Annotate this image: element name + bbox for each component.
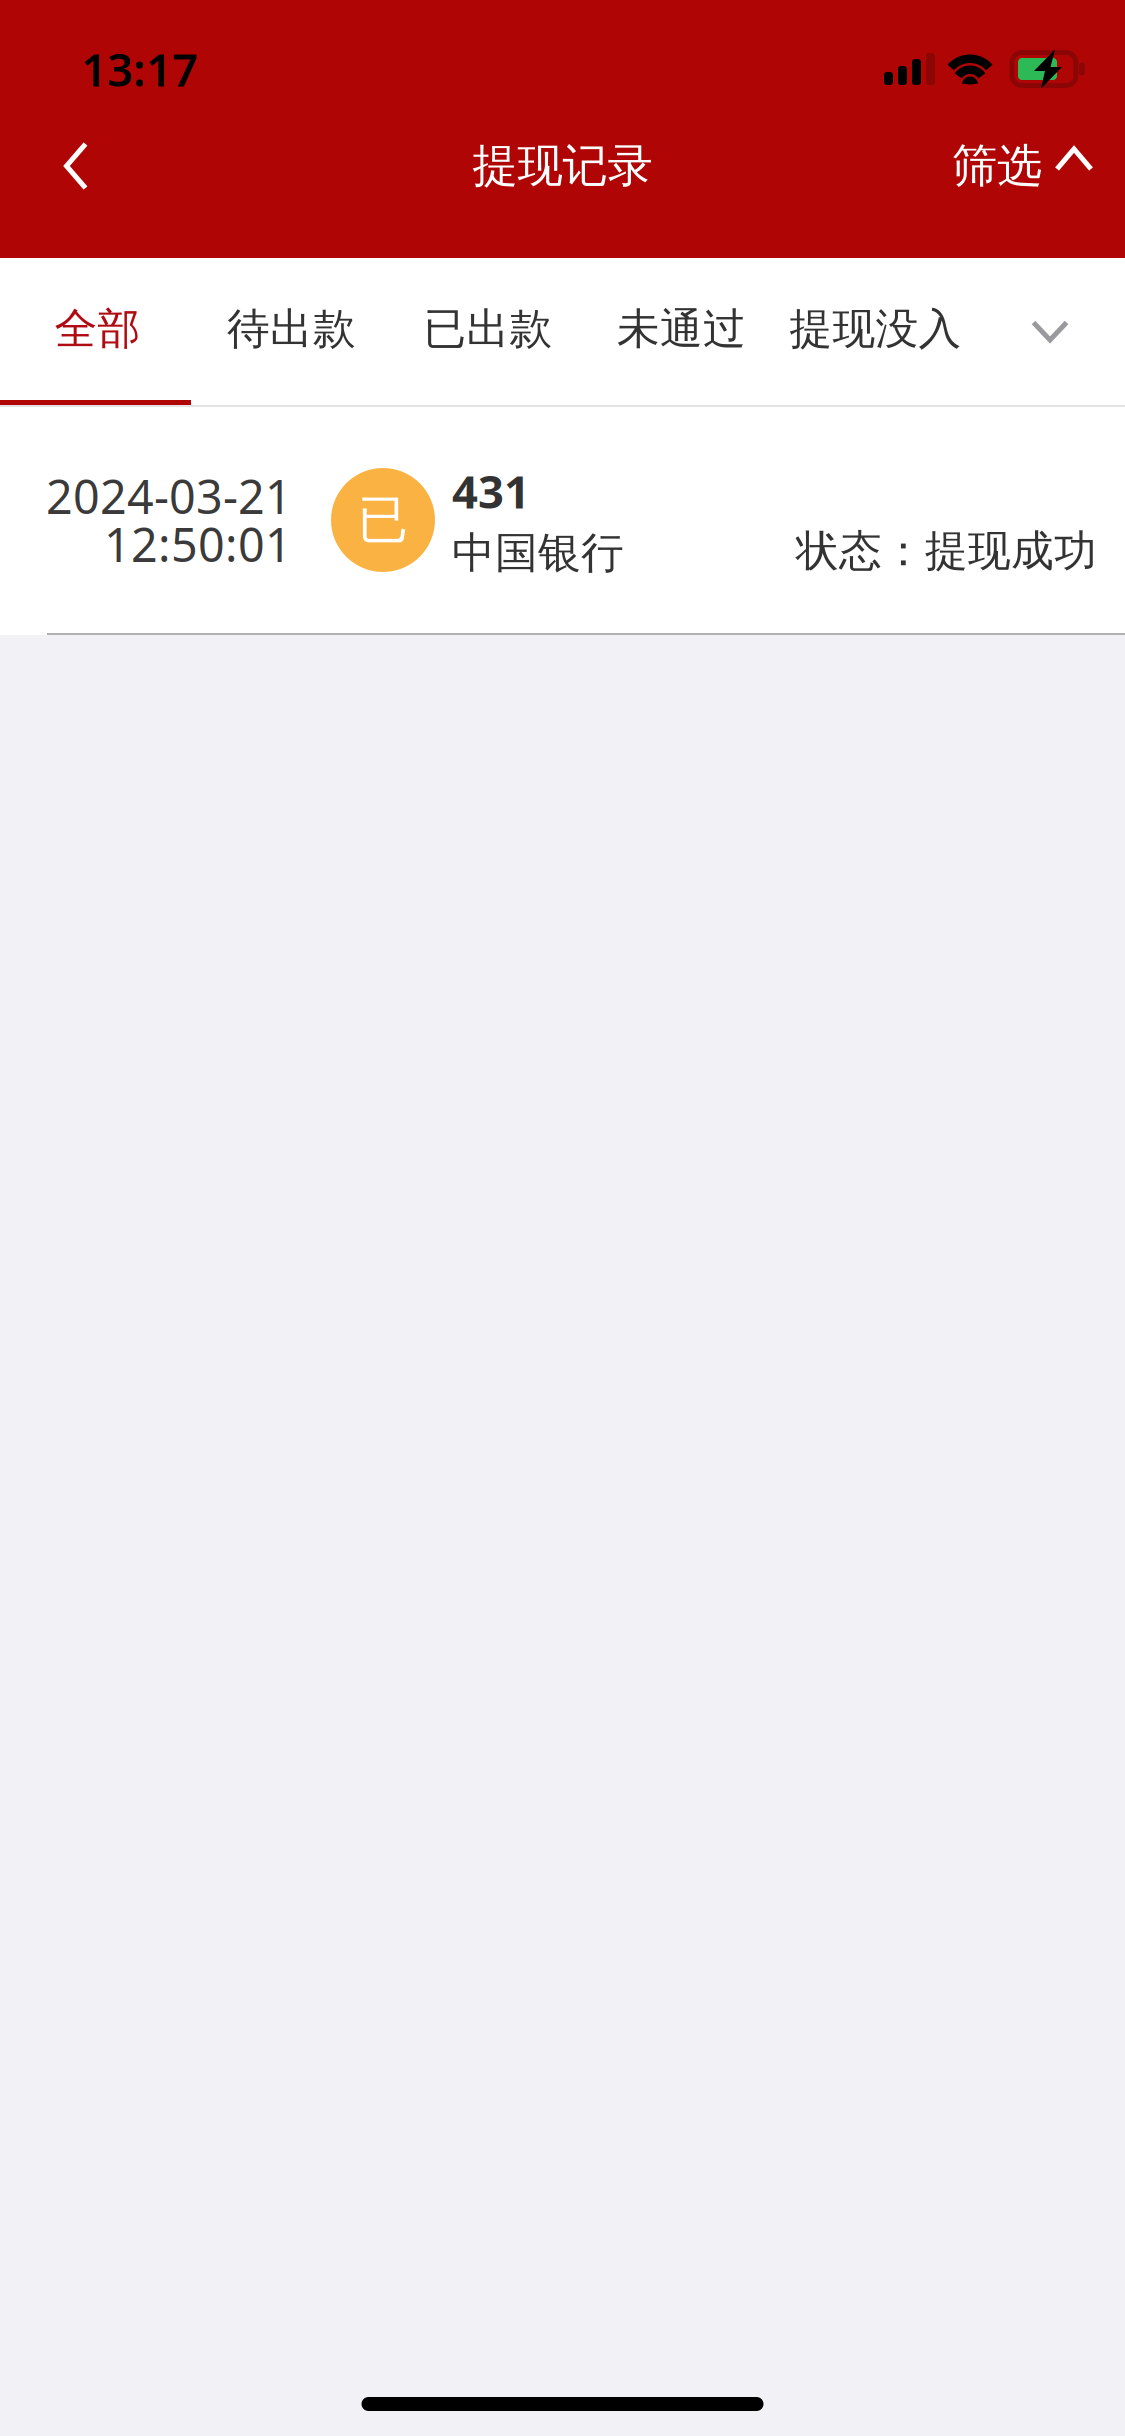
staticText: 13:17 xyxy=(81,39,198,99)
button[interactable]: 提现没入 xyxy=(779,258,972,405)
staticText: 2024-03-21 xyxy=(46,465,292,527)
button[interactable]: Back xyxy=(20,112,132,220)
staticText: 中国银行 xyxy=(452,527,624,579)
staticText: 筛选 xyxy=(952,138,1042,194)
button[interactable]: Expand filters xyxy=(1000,260,1125,403)
staticText: 状态：提现成功 xyxy=(796,525,1097,577)
button[interactable]: 2024-03-21 xyxy=(0,407,1125,635)
staticText: 12:50:01 xyxy=(104,513,292,575)
staticText: 未通过 xyxy=(617,303,746,355)
staticText: 提现记录 xyxy=(472,138,652,194)
button[interactable]: 全部 xyxy=(0,258,191,405)
button[interactable]: 未通过 xyxy=(584,258,779,405)
button[interactable]: 待出款 xyxy=(191,258,392,405)
button[interactable]: 筛选 xyxy=(928,112,1118,220)
staticText: 全部 xyxy=(54,303,140,355)
staticText: 已 xyxy=(357,489,408,551)
staticText: 已出款 xyxy=(423,303,552,355)
staticText: 提现没入 xyxy=(789,303,961,355)
staticText: 431 xyxy=(452,461,530,521)
button[interactable]: 已出款 xyxy=(392,258,584,405)
staticText: 待出款 xyxy=(227,303,356,355)
